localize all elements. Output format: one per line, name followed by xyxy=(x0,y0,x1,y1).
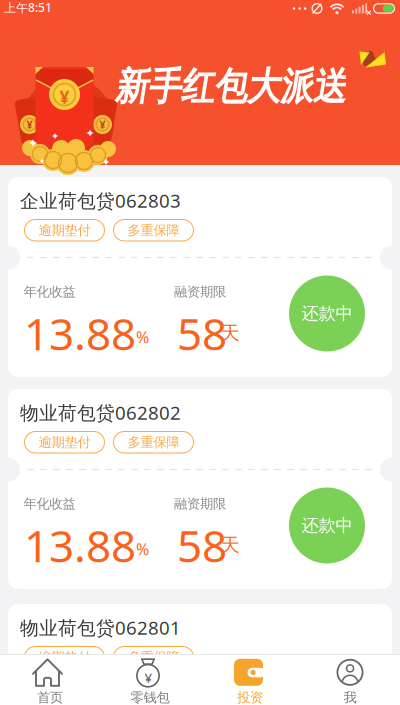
staticText: 融资期限 xyxy=(174,495,226,512)
button[interactable]: ¥ xyxy=(0,25,400,165)
staticText: 新手红包大派送 xyxy=(114,66,345,107)
staticText: 还款中 xyxy=(301,515,352,536)
staticText: 13.88 xyxy=(24,516,136,574)
staticText: 逾期垫付 xyxy=(38,434,90,450)
button[interactable]: 首页 xyxy=(0,655,100,705)
staticText: 13.88 xyxy=(24,304,136,362)
button[interactable]: 投资 xyxy=(200,655,300,705)
staticText: 天 xyxy=(221,533,240,556)
staticText: 投资 xyxy=(237,689,263,705)
staticText: 年化收益 xyxy=(23,495,75,512)
staticText: ¥ xyxy=(99,117,105,132)
staticText: 年化收益 xyxy=(23,283,75,300)
button[interactable]: 我 xyxy=(300,655,400,705)
staticText: 还款中 xyxy=(301,303,352,324)
staticText: 多重保障 xyxy=(127,434,179,450)
staticText: 我 xyxy=(343,689,356,705)
staticText: 逾期垫付 xyxy=(38,649,90,665)
button[interactable]: 物业荷包贷062802 xyxy=(8,389,392,589)
button[interactable]: 物业荷包贷062801 xyxy=(8,604,392,705)
staticText: 首页 xyxy=(37,689,63,705)
staticText: ¥ xyxy=(26,117,32,132)
staticText: 多重保障 xyxy=(127,649,179,665)
staticText: 多重保障 xyxy=(127,222,179,238)
staticText: 融资期限 xyxy=(174,283,226,300)
staticText: 58 xyxy=(177,304,227,362)
staticText: 物业荷包贷062801 xyxy=(20,615,181,640)
staticText: 逾期垫付 xyxy=(38,222,90,238)
staticText: 企业荷包贷062803 xyxy=(20,188,181,213)
staticText: 物业荷包贷062802 xyxy=(20,400,181,425)
staticText: ¥ xyxy=(59,85,69,108)
button[interactable]: 企业荷包贷062803 xyxy=(8,177,392,377)
button[interactable]: ¥ xyxy=(100,655,200,705)
staticText: 上午8:51 xyxy=(4,0,52,15)
staticText: 零钱包 xyxy=(130,689,169,705)
staticText: % xyxy=(136,538,149,560)
staticText: ¥ xyxy=(144,669,152,686)
staticText: 天 xyxy=(221,321,240,344)
staticText: 58 xyxy=(177,516,227,574)
staticText: % xyxy=(136,326,149,348)
